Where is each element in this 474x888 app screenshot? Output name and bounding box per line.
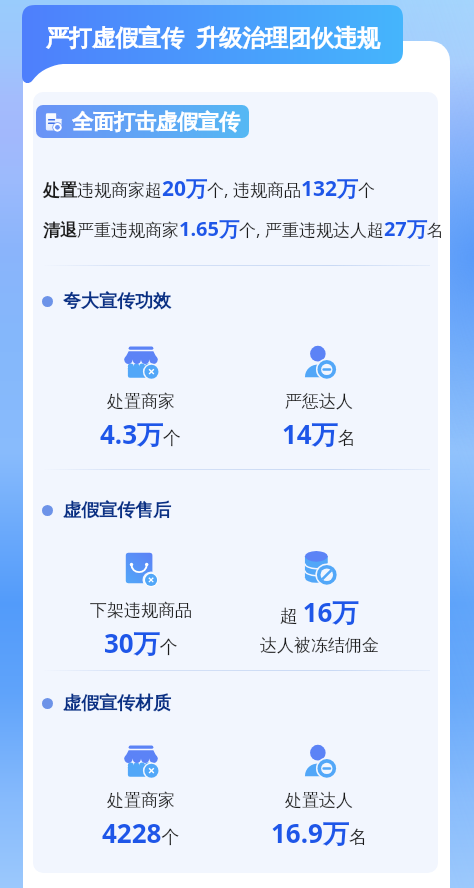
staticText: 夸大宣传功效 (63, 290, 171, 313)
button[interactable]: 全面打击虚假宣传 (44, 105, 240, 138)
staticText: 处置达人 (285, 790, 353, 811)
staticText: 严打虚假宣传 升级治理团伙违规 (46, 21, 380, 52)
button[interactable]: 处置达人 (239, 742, 399, 851)
button[interactable]: 处置商家 (61, 343, 221, 452)
staticText: 16.9万名 (271, 815, 367, 851)
staticText: 14万名 (282, 416, 356, 452)
staticText: 全面打击虚假宣传 (72, 109, 240, 135)
staticText: 严惩达人 (285, 391, 353, 412)
staticText: 下架违规商品 (90, 600, 192, 621)
staticText: 虚假宣传材质 (63, 692, 171, 715)
staticText: 处置违规商家超20万个, 违规商品132万个 (43, 174, 376, 203)
staticText: 清退严重违规商家1.65万个, 严重违规达人超27万名 (43, 215, 444, 242)
staticText: 处置商家 (107, 790, 175, 811)
staticText: 4.3万个 (100, 416, 182, 452)
button[interactable]: 处置商家 (61, 742, 221, 850)
button[interactable]: 严打虚假宣传 升级治理团伙违规 (22, 5, 403, 68)
staticText: 4228个 (102, 815, 180, 850)
staticText: 虚假宣传售后 (63, 499, 171, 522)
staticText: 达人被冻结佣金 (260, 635, 379, 656)
button[interactable]: 超 16万 (239, 548, 399, 656)
staticText: 处置商家 (107, 391, 175, 412)
button[interactable]: 下架违规商品 (61, 552, 221, 661)
staticText: 30万个 (104, 625, 178, 661)
button[interactable]: 严惩达人 (239, 343, 399, 452)
staticText: 超 16万 (280, 594, 359, 630)
